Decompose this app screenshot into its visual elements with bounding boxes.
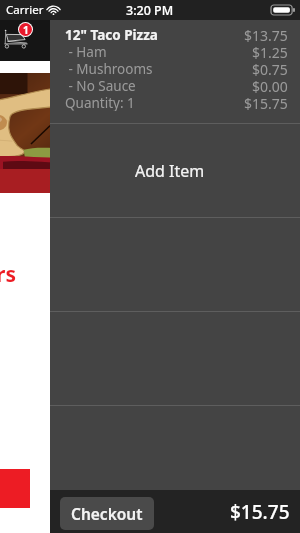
staticText: $13.75 <box>244 26 288 43</box>
staticText: Checkout <box>71 503 143 524</box>
staticText: 1 <box>23 23 29 36</box>
button[interactable]: Checkout <box>60 497 154 530</box>
staticText: $1.25 <box>252 43 288 60</box>
staticText: $0.75 <box>252 60 288 77</box>
staticText: Add Item <box>135 160 205 182</box>
button[interactable]: Add Item <box>50 124 300 217</box>
staticText: Quantity: 1 <box>65 94 135 111</box>
other: Battery full <box>271 5 295 15</box>
staticText: - Ham <box>65 43 107 60</box>
staticText: $15.75 <box>230 499 290 525</box>
staticText: $0.00 <box>252 77 288 94</box>
staticText: 12" Taco Pizza <box>65 26 158 43</box>
button[interactable]: Shopping cart <box>3 29 29 49</box>
staticText: 3:20 PM <box>126 2 174 19</box>
staticText: Carrier <box>6 2 44 18</box>
staticText: - No Sauce <box>65 77 136 94</box>
button[interactable]: 12" Taco Pizza <box>50 20 300 123</box>
staticText: $15.75 <box>244 94 288 111</box>
staticText: - Mushrooms <box>65 60 153 77</box>
other: Shopping cart <box>3 29 29 49</box>
staticText: Your Orders <box>0 260 17 289</box>
